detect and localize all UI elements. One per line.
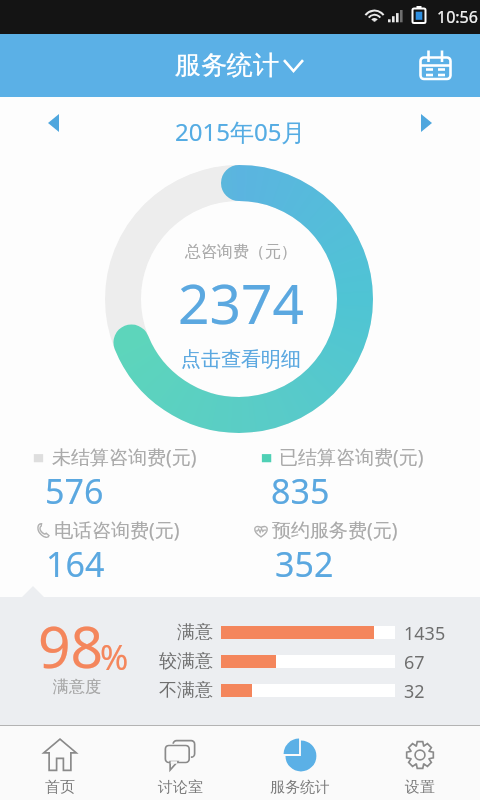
staticText: 满意 [177,621,213,643]
staticText: 未结算咨询费(元) [52,444,197,470]
button[interactable]: 服务统计 [175,49,304,82]
button[interactable]: 设置 [360,726,480,800]
staticText: 164 [46,541,105,587]
staticText: 较满意 [159,650,213,672]
staticText: % [100,634,129,680]
staticText: 不满意 [159,679,213,701]
staticText: 1435 [404,621,446,643]
staticText: 67 [404,650,425,672]
staticText: 服务统计 [175,49,279,82]
staticText: 835 [271,468,330,514]
button[interactable]: Previous month [33,103,73,143]
button[interactable]: 电话咨询费(元) [34,517,180,589]
button[interactable]: 已结算咨询费(元) [259,444,424,516]
staticText: 10:56 [437,6,478,28]
staticText: 设置 [405,778,435,797]
staticText: 已结算咨询费(元) [279,444,424,470]
staticText: 2015年05月 [175,115,306,148]
staticText: 总咨询费（元） [185,242,297,262]
staticText: 点击查看明细 [181,347,301,372]
staticText: 首页 [45,778,75,797]
staticText: 576 [45,468,104,514]
button[interactable]: 预约服务费(元) [252,517,398,589]
button[interactable]: Next month [406,103,446,143]
button[interactable]: 服务统计 [240,726,360,800]
button[interactable]: Calendar [414,45,458,89]
button[interactable]: 首页 [0,726,120,800]
staticText: 32 [404,679,425,701]
staticText: 98 [38,607,104,685]
staticText: 服务统计 [270,778,330,797]
staticText: 352 [275,541,334,587]
staticText: 电话咨询费(元) [54,517,180,543]
button[interactable]: 总咨询费（元） [178,242,304,372]
staticText: 预约服务费(元) [272,517,398,543]
staticText: 讨论室 [158,778,203,797]
button[interactable]: 讨论室 [120,726,240,800]
staticText: 满意度 [53,677,101,697]
staticText: 2374 [178,265,304,340]
button[interactable]: 未结算咨询费(元) [32,444,197,516]
